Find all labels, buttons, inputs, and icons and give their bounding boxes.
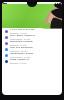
button[interactable]: MORNING CARDIO [2, 40, 62, 46]
button[interactable]: 7 DAY ABS & GLUTES [2, 28, 62, 34]
staticText: UPPER BODY BURN [10, 52, 34, 55]
staticText: HIIT FAT BURNING [10, 46, 33, 49]
staticText: FULL BODY STRETCH [10, 34, 35, 37]
staticText: CORE STABILITY [10, 58, 30, 61]
staticText: Beginner · 15 min [10, 44, 27, 46]
staticText: Intermediate · 18 min [10, 56, 31, 58]
staticText: MORNING CARDIO [10, 40, 33, 43]
button[interactable]: HIIT FAT BURNING [2, 46, 62, 52]
button[interactable]: UPPER BODY BURN [2, 52, 62, 58]
staticText: Beginner · 12 min [10, 32, 27, 34]
button[interactable]: CORE STABILITY [2, 58, 62, 64]
staticText: 7 DAY ABS & GLUTES [10, 28, 35, 31]
button[interactable]: FULL BODY STRETCH [2, 34, 62, 40]
staticText: Intermediate · 20 min [10, 38, 31, 40]
staticText: Advanced · 25 min [10, 50, 28, 52]
staticText: Beginner · 10 min [10, 62, 27, 64]
